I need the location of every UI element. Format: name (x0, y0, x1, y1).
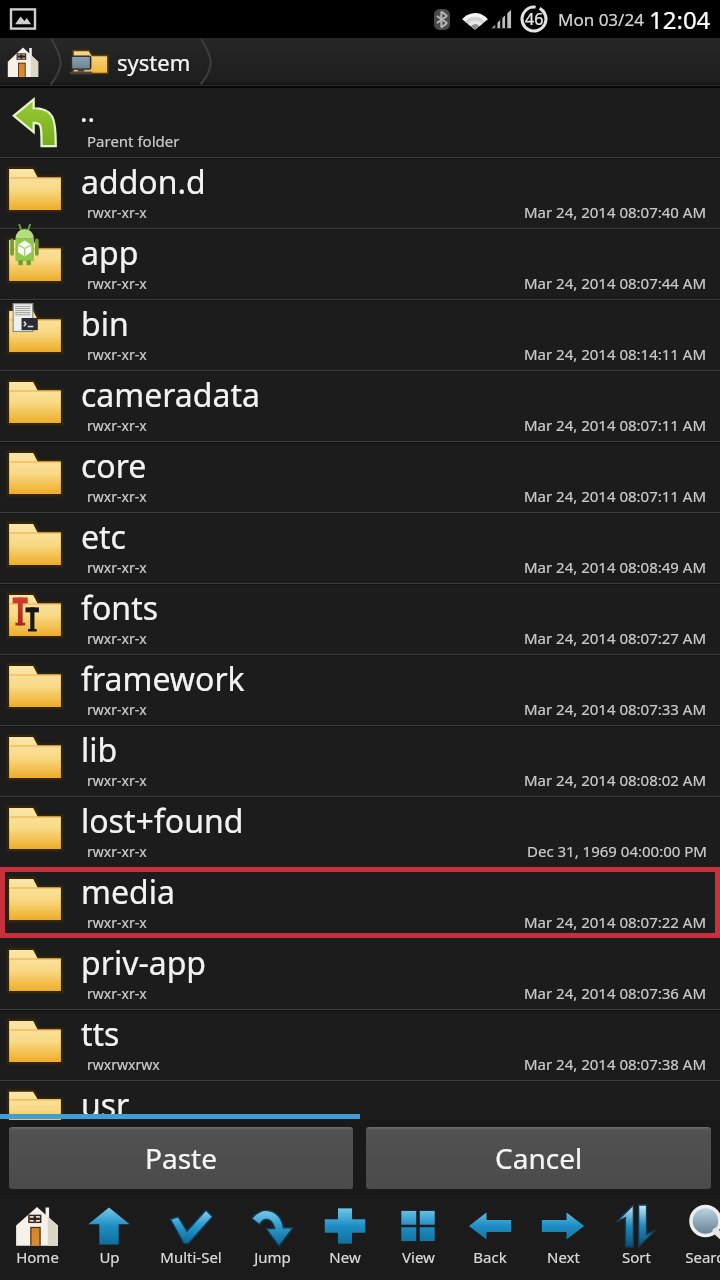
button[interactable]: Cancel (366, 1127, 711, 1189)
button[interactable]: Next (527, 1195, 599, 1280)
staticText: Sort (622, 1247, 651, 1267)
button[interactable]: Jump (236, 1195, 308, 1280)
staticText: cameradata (81, 373, 260, 417)
staticText: Mar 24, 2014 08:14:11 AM (524, 344, 707, 364)
button[interactable]: app (0, 228, 720, 299)
button[interactable]: media (0, 867, 720, 938)
staticText: core (81, 444, 147, 488)
button[interactable]: lib (0, 725, 720, 796)
button[interactable]: etc (0, 512, 720, 583)
staticText: Mar 24, 2014 08:07:11 AM (524, 415, 707, 435)
staticText: 46 (525, 8, 544, 30)
button[interactable]: Search (673, 1195, 720, 1280)
staticText: New (329, 1247, 361, 1267)
staticText: Dec 31, 1969 04:00:00 PM (527, 841, 707, 861)
staticText: Cancel (495, 1139, 583, 1177)
staticText: Multi-Sel (160, 1247, 222, 1267)
staticText: rwxr-xr-x (87, 274, 147, 293)
staticText: .. (80, 92, 96, 130)
staticText: Mar 24, 2014 08:07:33 AM (524, 699, 707, 719)
staticText: fonts (81, 586, 159, 630)
staticText: tts (81, 1012, 120, 1056)
staticText: rwxr-xr-x (87, 771, 147, 790)
staticText: Mar 24, 2014 08:07:11 AM (524, 486, 707, 506)
staticText: rwxr-xr-x (87, 842, 147, 861)
staticText: lib (81, 728, 118, 772)
staticText: Mar 24, 2014 08:08:02 AM (524, 770, 707, 790)
staticText: Home (16, 1247, 59, 1267)
staticText: rwxr-xr-x (87, 913, 147, 932)
button[interactable]: New (309, 1195, 381, 1280)
button[interactable]: lost+found (0, 796, 720, 867)
staticText: Up (99, 1247, 120, 1267)
staticText: Mar 24, 2014 08:08:49 AM (524, 557, 707, 577)
button[interactable]: framework (0, 654, 720, 725)
button[interactable]: tts (0, 1009, 720, 1080)
staticText: rwxr-xr-x (87, 984, 147, 1003)
staticText: rwxrwxrwx (87, 1055, 160, 1074)
button[interactable]: priv-app (0, 938, 720, 1009)
staticText: system (117, 47, 191, 77)
staticText: Next (547, 1247, 580, 1267)
button[interactable]: fonts (0, 583, 720, 654)
button[interactable]: View (382, 1195, 454, 1280)
button[interactable]: Paste (9, 1127, 353, 1189)
button[interactable]: addon.d (0, 157, 720, 228)
staticText: Mar 24, 2014 08:07:27 AM (524, 628, 707, 648)
staticText: Back (473, 1247, 507, 1267)
staticText: rwxr-xr-x (87, 558, 147, 577)
staticText: Paste (145, 1139, 217, 1177)
staticText: rwxr-xr-x (87, 416, 147, 435)
staticText: Search (685, 1247, 720, 1267)
staticText: Mar 24, 2014 08:07:44 AM (524, 273, 707, 293)
button[interactable]: usr (0, 1080, 720, 1120)
staticText: usr (81, 1083, 130, 1120)
button[interactable]: system (67, 38, 195, 85)
staticText: addon.d (81, 160, 206, 204)
staticText: Mon 03/24 (558, 8, 644, 31)
staticText: View (402, 1247, 435, 1267)
button[interactable]: core (0, 441, 720, 512)
button[interactable]: Back (454, 1195, 526, 1280)
button[interactable]: Multi-Sel (155, 1195, 227, 1280)
button[interactable]: cameradata (0, 370, 720, 441)
staticText: etc (81, 515, 126, 559)
staticText: rwxr-xr-x (87, 203, 147, 222)
staticText: lost+found (81, 799, 244, 843)
button[interactable]: Sort (600, 1195, 672, 1280)
button[interactable]: Home (0, 46, 45, 78)
staticText: Mar 24, 2014 08:07:36 AM (524, 983, 707, 1003)
staticText: rwxr-xr-x (87, 700, 147, 719)
staticText: rwxr-xr-x (87, 345, 147, 364)
button[interactable]: .. (0, 88, 720, 157)
staticText: rwxr-xr-x (87, 629, 147, 648)
staticText: media (81, 870, 175, 914)
staticText: bin (81, 302, 129, 346)
staticText: Mar 24, 2014 08:07:40 AM (524, 202, 707, 222)
staticText: rwxr-xr-x (87, 487, 147, 506)
button[interactable]: bin (0, 299, 720, 370)
staticText: priv-app (81, 941, 207, 985)
staticText: Mar 24, 2014 08:07:38 AM (524, 1054, 707, 1074)
staticText: app (81, 231, 139, 275)
staticText: Parent folder (87, 131, 180, 151)
button[interactable]: Home (1, 1195, 73, 1280)
staticText: Mar 24, 2014 08:07:22 AM (524, 912, 707, 932)
button[interactable]: Up (73, 1195, 145, 1280)
staticText: framework (81, 657, 245, 701)
staticText: Jump (254, 1247, 291, 1267)
staticText: 12:04 (649, 3, 711, 36)
